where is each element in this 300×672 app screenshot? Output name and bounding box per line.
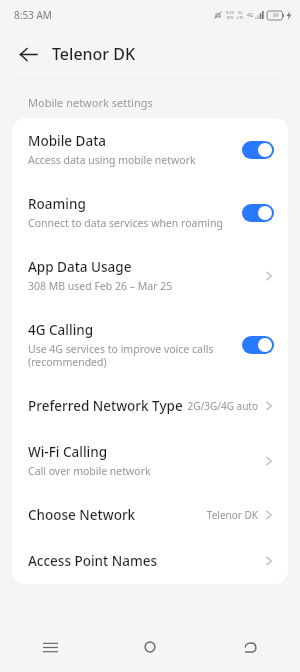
staticText: 4G Calling [28,321,94,339]
staticText: Call over mobile network [28,464,151,478]
staticText: Mobile network settings [28,95,153,110]
button[interactable]: Toggle [242,204,274,222]
staticText: Access Point Names [28,552,158,570]
button[interactable]: Back [8,34,48,74]
staticText: Use 4G services to improve voice calls (… [28,342,214,369]
staticText: LTE [237,15,244,20]
button[interactable]: Choose Network [12,492,288,538]
button[interactable]: Preferred Network Type [12,383,288,429]
staticText: 0.00 [226,10,234,15]
button[interactable]: Mobile Data [12,118,288,181]
staticText: B/S [227,15,234,20]
button[interactable]: Back [200,622,300,672]
staticText: App Data Usage [28,258,132,276]
button[interactable]: App Data Usage [12,244,288,307]
button[interactable]: Wi-Fi Calling [12,429,288,492]
staticText: Vo [238,10,243,15]
staticText: Telenor DK [52,43,136,65]
button[interactable]: Access Point Names [12,538,288,584]
staticText: Connect to data services when roaming [28,216,223,230]
staticText: 8:53 AM [14,8,52,22]
button[interactable]: Toggle [242,336,274,354]
staticText: Access data using mobile network [28,153,196,167]
button[interactable]: Toggle [242,141,274,159]
staticText: Telenor DK [206,508,258,522]
staticText: 4G [247,12,254,19]
button[interactable]: Recent apps [0,622,100,672]
staticText: 2G/3G/4G auto [187,399,258,413]
staticText: 89 [273,12,279,19]
button[interactable]: Home [100,622,200,672]
staticText: Choose Network [28,506,136,524]
staticText: Mobile Data [28,132,107,150]
staticText: Roaming [28,195,86,213]
staticText: Preferred Network Type [28,397,183,415]
staticText: 308 MB used Feb 26 – Mar 25 [28,279,173,293]
button[interactable]: 4G Calling [12,307,288,383]
staticText: Wi-Fi Calling [28,443,108,461]
button[interactable]: Roaming [12,181,288,244]
